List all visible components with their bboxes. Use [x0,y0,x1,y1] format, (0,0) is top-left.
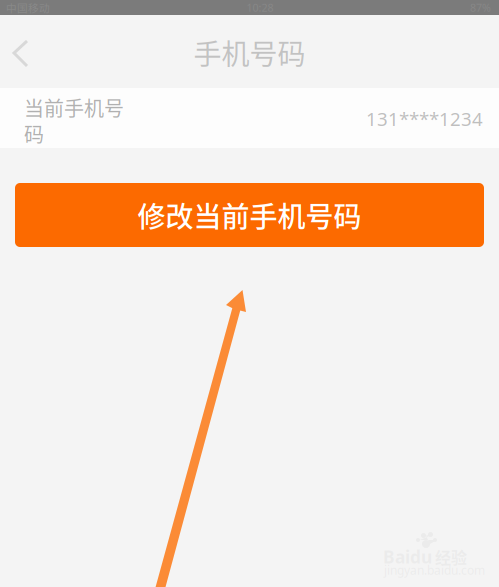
button[interactable]: 修改当前手机号码 [15,183,484,247]
staticText: 10:28 [246,0,273,15]
staticText: Baidu [383,545,432,569]
staticText: 131****1234 [366,106,483,131]
staticText: 87% [470,0,491,15]
staticText: 经验 [435,545,467,568]
staticText: 当前手机号 [24,93,124,122]
button[interactable]: 返回 [0,15,44,88]
staticText: 中国移动 [6,0,50,15]
staticText: 手机号码 [193,32,305,73]
staticText: 修改当前手机号码 [137,195,361,235]
staticText: 码 [24,119,44,148]
